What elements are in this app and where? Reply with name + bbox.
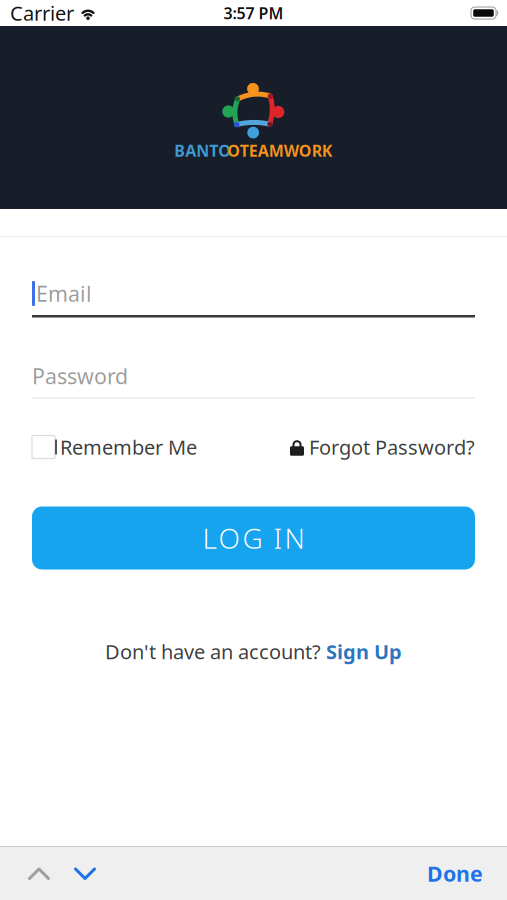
- button[interactable]: Next field: [74, 866, 96, 880]
- staticText: Don't have an account?: [105, 638, 326, 665]
- staticText: LOG IN: [202, 519, 304, 557]
- button[interactable]: Remember Me: [32, 434, 197, 460]
- staticText: Done: [427, 859, 483, 888]
- button[interactable]: Password: [32, 363, 475, 398]
- staticText: Password: [32, 362, 128, 390]
- button[interactable]: Done: [427, 859, 483, 888]
- staticText: O: [227, 140, 240, 161]
- staticText: Forgot Password?: [309, 434, 475, 460]
- staticText: Remember Me: [60, 434, 197, 460]
- staticText: Sign Up: [326, 638, 402, 665]
- button[interactable]: LOG IN: [32, 506, 475, 569]
- button[interactable]: Sign Up: [326, 638, 402, 665]
- staticText: 3:57 PM: [223, 2, 283, 24]
- button[interactable]: Previous field: [28, 866, 50, 880]
- staticText: BANTO: [174, 140, 231, 161]
- staticText: Carrier: [10, 0, 74, 26]
- button[interactable]: Forgot Password?: [290, 434, 475, 460]
- staticText: Email: [36, 279, 92, 308]
- button[interactable]: Email: [32, 281, 475, 317]
- staticText: TEAMWORK: [240, 140, 333, 161]
